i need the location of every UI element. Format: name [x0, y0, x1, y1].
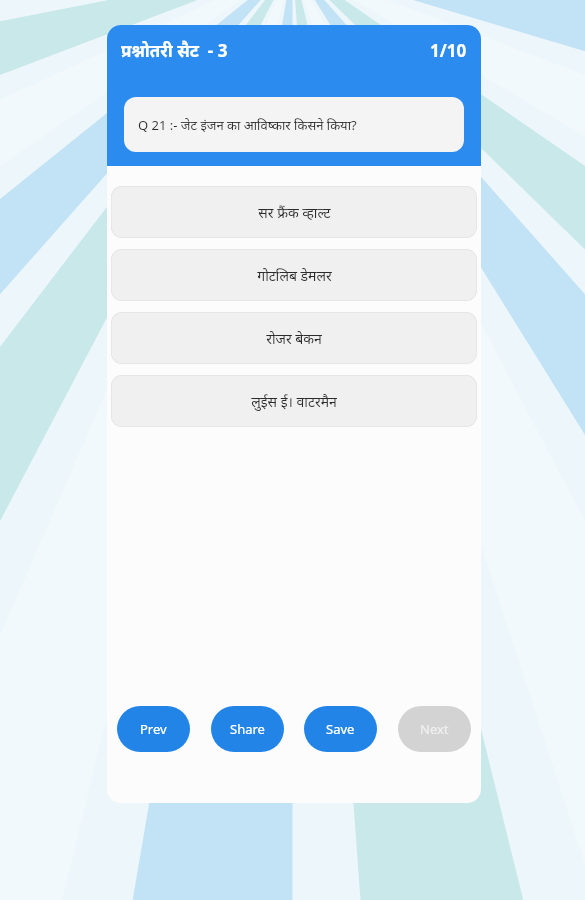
staticText: 1/10 [430, 39, 467, 62]
staticText: Save [326, 720, 355, 738]
button[interactable]: Share [211, 706, 284, 752]
staticText: Share [230, 720, 265, 738]
staticText: Q 21 :- जेट इंजन का आविष्कार किसने किया? [138, 116, 357, 134]
staticText: Next [420, 720, 449, 738]
staticText: गोटलिब डेमलर [257, 266, 332, 285]
staticText: रोजर बेकन [266, 329, 322, 348]
staticText: Prev [140, 720, 167, 738]
button[interactable]: सर फ्रैंक व्हाल्ट [111, 186, 477, 238]
staticText: प्रश्नोतरी सैट - 3 [121, 39, 228, 62]
button[interactable]: Prev [117, 706, 190, 752]
button[interactable]: Save [304, 706, 377, 752]
button[interactable]: गोटलिब डेमलर [111, 249, 477, 301]
staticText: सर फ्रैंक व्हाल्ट [258, 203, 331, 222]
button[interactable]: Next [398, 706, 471, 752]
button[interactable]: लुईस ई। वाटरमैन [111, 375, 477, 427]
staticText: लुईस ई। वाटरमैन [251, 392, 337, 411]
button[interactable]: रोजर बेकन [111, 312, 477, 364]
